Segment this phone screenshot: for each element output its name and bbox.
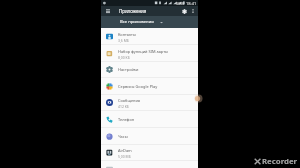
staticText: Recorder bbox=[262, 156, 298, 167]
staticText: Приложения bbox=[119, 8, 147, 14]
button[interactable]: AirDam bbox=[101, 144, 198, 161]
staticText: 5,00 МБ bbox=[118, 154, 131, 159]
staticText: 3,6 МБ bbox=[118, 38, 129, 43]
button[interactable]: More options bbox=[188, 6, 198, 16]
button[interactable]: Календарь bbox=[101, 161, 198, 168]
staticText: Телефон bbox=[118, 117, 135, 122]
button[interactable]: Settings bbox=[179, 6, 189, 16]
staticText: Сообщения bbox=[118, 98, 141, 103]
button[interactable]: Набор функций SIM-карты bbox=[101, 45, 198, 62]
staticText: AirDam bbox=[118, 148, 132, 153]
staticText: Настройки bbox=[118, 67, 139, 72]
staticText: 412 КБ bbox=[118, 104, 129, 109]
staticText: Часы bbox=[118, 134, 128, 139]
button[interactable]: Сообщения bbox=[101, 94, 198, 111]
button[interactable]: Сервисы Google Play bbox=[101, 78, 198, 95]
button[interactable]: Часы bbox=[101, 128, 198, 145]
button[interactable]: Телефон bbox=[101, 111, 198, 128]
staticText: 18:41 bbox=[186, 1, 197, 6]
staticText: Сервисы Google Play bbox=[118, 84, 158, 89]
staticText: Все приложения bbox=[120, 19, 154, 25]
button[interactable]: Open navigation menu bbox=[103, 6, 113, 16]
staticText: 50% bbox=[176, 1, 184, 6]
button[interactable]: Контакты bbox=[101, 28, 198, 45]
staticText: 8,00 КБ bbox=[118, 55, 130, 60]
staticText: Контакты bbox=[118, 32, 136, 37]
button[interactable]: Все приложения bbox=[101, 16, 198, 28]
staticText: Набор функций SIM-карты bbox=[118, 49, 168, 54]
button[interactable]: Настройки bbox=[101, 61, 198, 78]
